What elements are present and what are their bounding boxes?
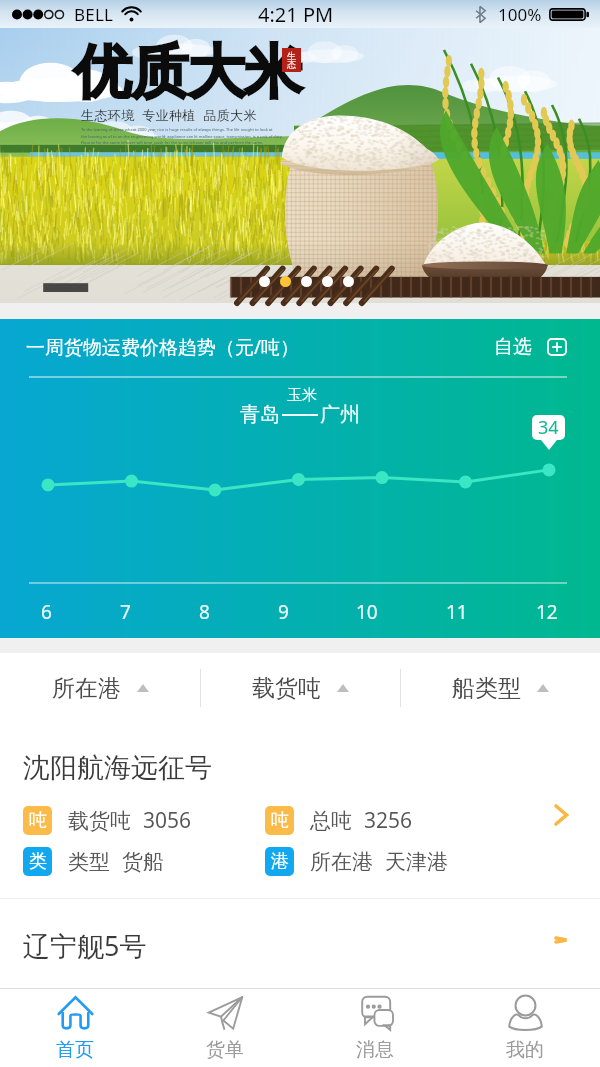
staticText: 玉米 <box>287 386 317 405</box>
staticText: 3056 <box>143 806 192 835</box>
staticText: 沈阳航海远征号 <box>23 751 212 785</box>
staticText: 吨 <box>29 809 47 832</box>
button[interactable]: 货单 <box>150 989 300 1067</box>
staticText: 优质大米 <box>74 36 302 109</box>
staticText: 载货吨 <box>68 808 131 834</box>
staticText: 类 <box>29 850 47 873</box>
staticText: 生 态 <box>287 50 296 71</box>
staticText: 8 <box>199 599 210 625</box>
button[interactable]: 船类型 <box>401 653 600 723</box>
staticText: 7 <box>120 599 131 625</box>
staticText: 6 <box>41 599 52 625</box>
staticText: 类型 <box>68 849 110 875</box>
staticText: 辽宁舰5号 <box>23 927 147 964</box>
staticText: 首页 <box>56 1038 94 1062</box>
staticText: 港 <box>271 850 289 873</box>
staticText: 4:21 PM <box>258 1 334 28</box>
staticText: 船类型 <box>452 674 521 703</box>
staticText: 载货吨 <box>252 674 321 703</box>
staticText: 总吨 <box>310 808 352 834</box>
staticText: To the leaning of these wheat 2000 year,… <box>81 127 283 145</box>
staticText: 广州 <box>320 402 360 427</box>
button[interactable]: 自选 <box>490 331 571 363</box>
button[interactable]: 所在港 <box>0 653 200 723</box>
staticText: 10 <box>356 599 378 625</box>
staticText: 我的 <box>506 1038 544 1062</box>
staticText: 3256 <box>364 806 413 835</box>
button[interactable]: 辽宁舰5号 <box>0 899 600 988</box>
staticText: 消息 <box>356 1038 394 1062</box>
other: Details <box>554 804 569 826</box>
staticText: 100% <box>498 3 542 26</box>
staticText: 货单 <box>206 1038 244 1062</box>
staticText: 12 <box>536 599 558 625</box>
button[interactable]: 载货吨 <box>201 653 400 723</box>
staticText: 生态环境 专业种植 品质大米 <box>81 106 257 124</box>
other: Add <box>547 338 567 356</box>
staticText: 所在港 <box>310 849 373 875</box>
staticText: 9 <box>278 599 289 625</box>
staticText: 自选 <box>494 335 532 359</box>
staticText: 一周货物运费价格趋势（元/吨） <box>26 334 300 360</box>
button[interactable]: 消息 <box>300 989 450 1067</box>
staticText: 天津港 <box>385 849 448 875</box>
staticText: 所在港 <box>52 674 121 703</box>
staticText: 34 <box>538 415 559 440</box>
staticText: BELL <box>74 3 114 26</box>
button[interactable]: 沈阳航海远征号 <box>0 723 600 898</box>
staticText: 青岛 <box>240 402 280 427</box>
button[interactable]: 我的 <box>450 989 600 1067</box>
staticText: 货船 <box>122 849 164 875</box>
button[interactable]: 首页 <box>0 989 150 1067</box>
staticText: 11 <box>446 599 468 625</box>
staticText: 吨 <box>271 809 289 832</box>
